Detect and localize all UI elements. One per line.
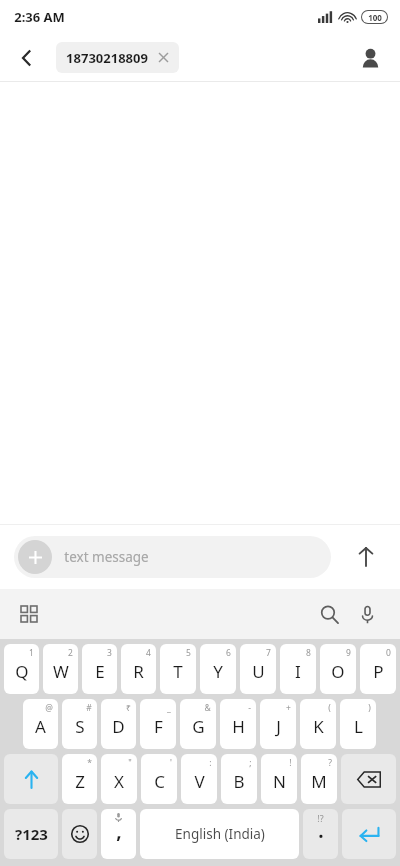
- staticText: J: [276, 715, 281, 738]
- button[interactable]: _: [140, 699, 176, 749]
- staticText: R: [133, 660, 144, 683]
- staticText: +: [286, 702, 291, 714]
- staticText: #: [86, 702, 92, 714]
- button[interactable]: ': [141, 754, 177, 804]
- staticText: 8: [306, 647, 311, 659]
- staticText: text message: [64, 548, 149, 566]
- staticText: 100: [368, 12, 382, 23]
- staticText: .: [318, 818, 324, 844]
- button[interactable]: Emoji: [62, 809, 97, 859]
- button[interactable]: ": [101, 754, 137, 804]
- other: Add attachment: [18, 540, 52, 574]
- button[interactable]: *: [62, 754, 97, 804]
- staticText: P: [373, 660, 384, 683]
- button[interactable]: Enter: [342, 809, 396, 859]
- staticText: T: [173, 660, 183, 683]
- button[interactable]: English (India): [140, 809, 299, 859]
- button[interactable]: +: [260, 699, 296, 749]
- staticText: 18730218809: [66, 49, 148, 67]
- button[interactable]: Send: [344, 535, 388, 579]
- button[interactable]: ?: [301, 754, 337, 804]
- staticText: &: [204, 702, 211, 714]
- button[interactable]: 6: [200, 644, 236, 694]
- staticText: V: [194, 770, 205, 793]
- staticText: *: [87, 757, 92, 769]
- button[interactable]: 8: [280, 644, 316, 694]
- button[interactable]: Voice input: [348, 595, 386, 633]
- staticText: B: [233, 770, 245, 793]
- staticText: 1: [29, 647, 34, 659]
- button[interactable]: -: [220, 699, 256, 749]
- staticText: A: [35, 715, 46, 738]
- button[interactable]: &: [180, 699, 216, 749]
- button[interactable]: ;: [221, 754, 257, 804]
- staticText: N: [273, 770, 286, 793]
- button[interactable]: !: [261, 754, 297, 804]
- button[interactable]: Period: [303, 809, 338, 859]
- button[interactable]: 7: [240, 644, 276, 694]
- staticText: English (India): [175, 825, 265, 843]
- button[interactable]: :: [181, 754, 217, 804]
- staticText: ?: [328, 757, 332, 769]
- staticText: ?123: [15, 824, 48, 844]
- staticText: 0: [386, 647, 391, 659]
- staticText: 6: [226, 647, 231, 659]
- staticText: :: [209, 757, 212, 769]
- staticText: I: [295, 660, 301, 683]
- button[interactable]: 5: [160, 644, 196, 694]
- staticText: 2:36 AM: [14, 8, 65, 26]
- button[interactable]: Search: [310, 595, 348, 633]
- button[interactable]: Shift: [4, 754, 58, 804]
- staticText: H: [232, 715, 245, 738]
- button[interactable]: ): [340, 699, 376, 749]
- staticText: ": [128, 757, 132, 769]
- button[interactable]: Keyboard menu: [12, 597, 46, 631]
- staticText: _: [167, 702, 171, 714]
- staticText: E: [95, 660, 105, 683]
- staticText: L: [354, 715, 363, 738]
- staticText: D: [112, 715, 125, 738]
- staticText: Q: [15, 660, 29, 683]
- staticText: ): [368, 702, 371, 714]
- button[interactable]: Contact: [350, 38, 390, 78]
- staticText: Y: [213, 660, 223, 683]
- staticText: M: [311, 770, 327, 793]
- staticText: 3: [107, 647, 112, 659]
- button[interactable]: Add attachment: [14, 536, 331, 578]
- staticText: X: [114, 770, 124, 793]
- staticText: 2: [68, 647, 73, 659]
- button[interactable]: #: [62, 699, 97, 749]
- staticText: F: [154, 715, 163, 738]
- button[interactable]: 3: [82, 644, 117, 694]
- staticText: @: [45, 702, 53, 714]
- button[interactable]: 2: [43, 644, 78, 694]
- staticText: 7: [266, 647, 271, 659]
- button[interactable]: Comma: [101, 809, 136, 859]
- staticText: K: [313, 715, 324, 738]
- button[interactable]: Backspace: [341, 754, 396, 804]
- button[interactable]: ?123: [4, 809, 58, 859]
- button[interactable]: @: [23, 699, 58, 749]
- button[interactable]: ₹: [101, 699, 136, 749]
- button[interactable]: 18730218809: [56, 42, 179, 73]
- button[interactable]: 1: [4, 644, 39, 694]
- staticText: Z: [75, 770, 85, 793]
- staticText: C: [154, 770, 165, 793]
- staticText: ;: [249, 757, 252, 769]
- staticText: O: [331, 660, 345, 683]
- button[interactable]: 0: [360, 644, 396, 694]
- staticText: !?: [317, 812, 324, 824]
- staticText: 4: [146, 647, 151, 659]
- staticText: W: [53, 660, 69, 683]
- button[interactable]: (: [300, 699, 336, 749]
- staticText: U: [252, 660, 265, 683]
- button[interactable]: Back: [6, 37, 48, 79]
- staticText: 9: [346, 647, 351, 659]
- staticText: ₹: [126, 702, 131, 714]
- staticText: S: [75, 715, 85, 738]
- button[interactable]: 9: [320, 644, 356, 694]
- button[interactable]: 4: [121, 644, 156, 694]
- staticText: !: [289, 757, 292, 769]
- staticText: (: [328, 702, 331, 714]
- staticText: 5: [186, 647, 191, 659]
